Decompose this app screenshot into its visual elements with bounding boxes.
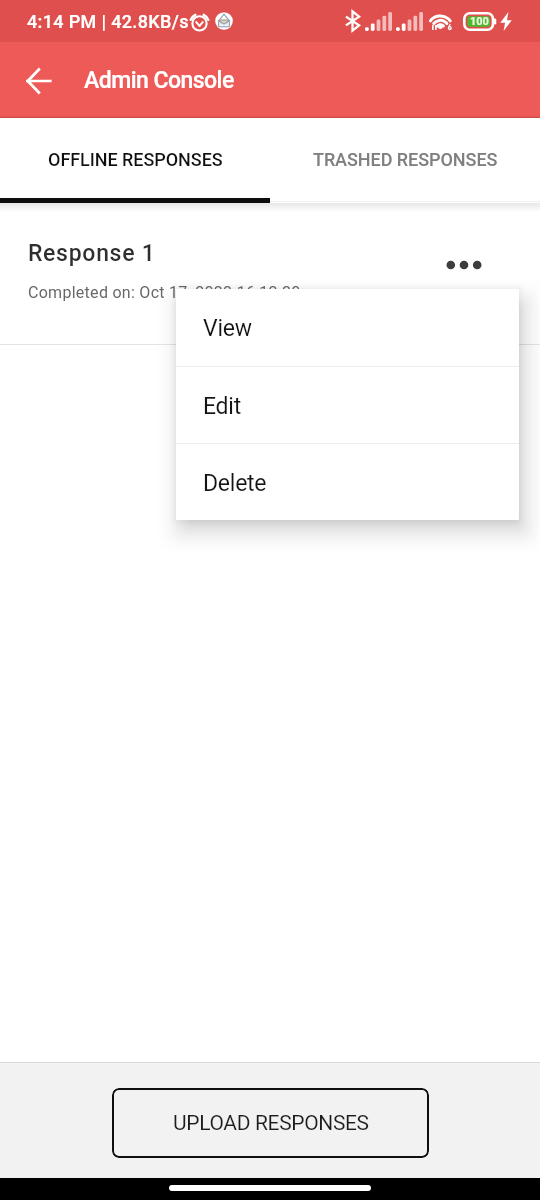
button[interactable]: Back [14,56,63,105]
button[interactable]: OFFLINE RESPONSES [0,118,270,198]
staticText: View [203,315,252,342]
staticText: UPLOAD RESPONSES [173,1111,369,1136]
button[interactable]: Response 1 [0,203,540,345]
button[interactable]: Edit [176,367,519,443]
staticText: 100 [470,15,489,28]
staticText: Edit [203,393,241,420]
staticText: TRASHED RESPONSES [313,149,498,170]
button[interactable]: TRASHED RESPONSES [270,118,540,198]
button[interactable]: View [176,289,519,366]
staticText: 4:14 PM | 42.8KB/s [27,11,189,32]
staticText: Response 1 [28,240,156,267]
button[interactable]: Delete [176,444,519,520]
staticText: OFFLINE RESPONSES [48,149,223,170]
staticText: Completed on: Oct 17, 2022 16:12:20 [28,283,301,302]
staticText: Delete [203,470,267,497]
staticText: Admin Console [84,67,234,94]
button[interactable]: More options [440,241,488,289]
button[interactable]: UPLOAD RESPONSES [112,1088,429,1158]
